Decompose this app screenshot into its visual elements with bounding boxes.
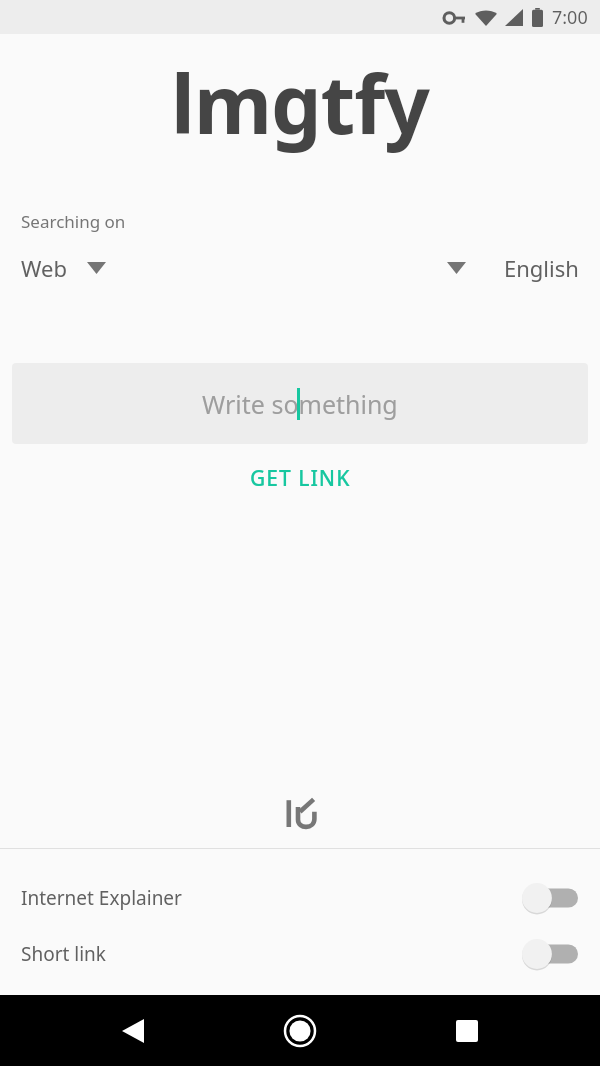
staticText: GET LINK (250, 464, 351, 493)
button[interactable]: Web (18, 249, 109, 287)
staticText: 7:00 (552, 5, 588, 30)
staticText: Searching on (21, 210, 126, 233)
other: App logo (280, 795, 320, 835)
button[interactable]: Write something (12, 363, 588, 444)
staticText: Web (21, 253, 67, 283)
button[interactable]: English (444, 249, 582, 287)
button[interactable]: Internet Explainer (0, 870, 600, 926)
button[interactable]: Back (105, 1003, 161, 1059)
button[interactable]: Home (271, 1002, 329, 1060)
staticText: Write something (202, 387, 398, 421)
staticText: Short link (21, 941, 107, 967)
button[interactable]: Recent apps (439, 1003, 495, 1059)
staticText: Internet Explainer (21, 885, 182, 911)
staticText: English (504, 253, 579, 283)
button[interactable]: GET LINK (234, 458, 367, 499)
button[interactable]: Short link (0, 926, 600, 982)
staticText: lmgtfy (0, 48, 600, 157)
